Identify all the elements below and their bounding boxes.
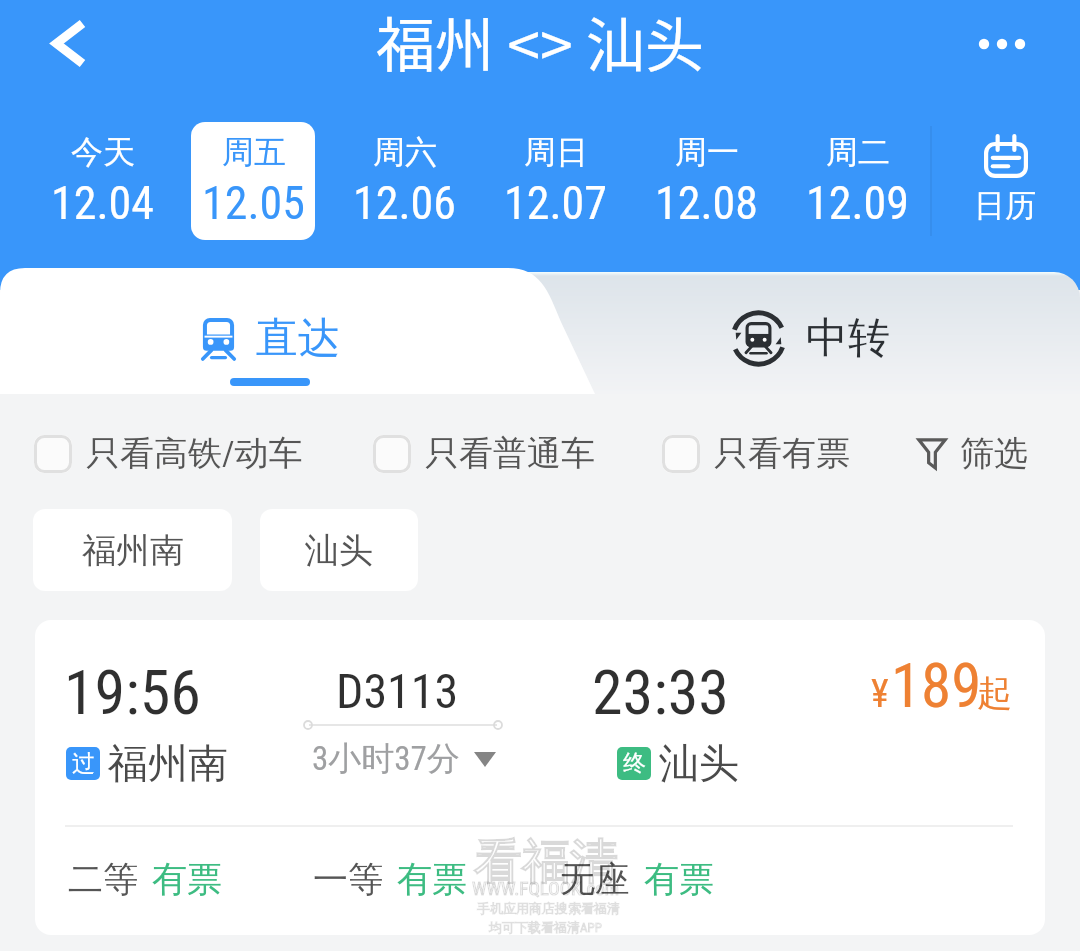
button[interactable]: More options	[972, 10, 1036, 74]
staticText: 福州南	[82, 529, 184, 572]
button[interactable]: 一等	[313, 857, 467, 901]
button[interactable]: 周日	[493, 122, 617, 240]
staticText: 12.05	[202, 176, 305, 230]
button[interactable]: 周一	[644, 122, 768, 240]
staticText: 看福清	[474, 832, 618, 892]
staticText: 周日	[524, 132, 588, 172]
staticText: 无座	[560, 857, 630, 901]
staticText: 福州南	[108, 738, 228, 788]
button[interactable]: 福州南	[33, 509, 232, 591]
button[interactable]: 周五	[191, 122, 315, 240]
staticText: 周五	[222, 132, 286, 172]
staticText: 有票	[152, 857, 222, 901]
staticText: 只看有票	[714, 432, 850, 475]
button[interactable]: 汕头	[260, 509, 418, 591]
staticText: WWW.FQLOOK.com	[472, 877, 620, 899]
staticText: 有票	[644, 857, 714, 901]
staticText: 12.06	[353, 176, 456, 230]
staticText: 3小时37分	[312, 738, 460, 780]
button[interactable]: 只看有票	[662, 432, 850, 475]
button[interactable]: Back	[32, 10, 100, 78]
staticText: 只看普通车	[425, 432, 595, 475]
staticText: 筛选	[960, 432, 1028, 475]
staticText: 只看高铁/动车	[86, 432, 303, 475]
button[interactable]: Calendar	[930, 122, 1080, 240]
staticText: 过	[72, 749, 95, 778]
staticText: 周一	[675, 132, 739, 172]
staticText: 一等	[313, 857, 383, 901]
button[interactable]: 无座	[560, 857, 714, 901]
button[interactable]: 19:56	[35, 620, 1045, 935]
button[interactable]: 二等	[68, 857, 222, 901]
staticText: 12.08	[655, 176, 758, 230]
staticText: 12.09	[806, 176, 909, 230]
staticText: ¥	[871, 672, 889, 717]
staticText: 12.04	[51, 176, 154, 230]
staticText: 日历	[974, 186, 1036, 225]
staticText: 均可下载看福清APP	[489, 919, 602, 935]
staticText: 福州 <> 汕头	[376, 0, 704, 84]
staticText: 189	[891, 650, 982, 721]
staticText: 直达	[256, 312, 340, 365]
button[interactable]: 直达	[160, 286, 380, 372]
staticText: 19:56	[64, 656, 201, 729]
staticText: 有票	[397, 857, 467, 901]
button[interactable]: 周六	[342, 122, 466, 240]
staticText: 起	[977, 671, 1012, 715]
button[interactable]: 中转	[700, 286, 920, 372]
staticText: 终	[623, 749, 646, 778]
staticText: 中转	[806, 312, 890, 365]
staticText: 今天	[71, 132, 135, 172]
button[interactable]: 今天	[40, 122, 164, 240]
button[interactable]: 周二	[795, 122, 919, 240]
staticText: D3113	[336, 663, 459, 719]
button[interactable]: 只看高铁/动车	[34, 432, 303, 475]
staticText: 周六	[373, 132, 437, 172]
staticText: 23:33	[592, 656, 729, 729]
staticText: 周二	[826, 132, 890, 172]
staticText: 汕头	[659, 738, 739, 788]
button[interactable]: 筛选	[918, 432, 1028, 475]
staticText: 二等	[68, 857, 138, 901]
staticText: 手机应用商店搜索看福清	[477, 900, 620, 916]
button[interactable]: 只看普通车	[373, 432, 595, 475]
staticText: 汕头	[305, 529, 373, 572]
staticText: 12.07	[504, 176, 607, 230]
